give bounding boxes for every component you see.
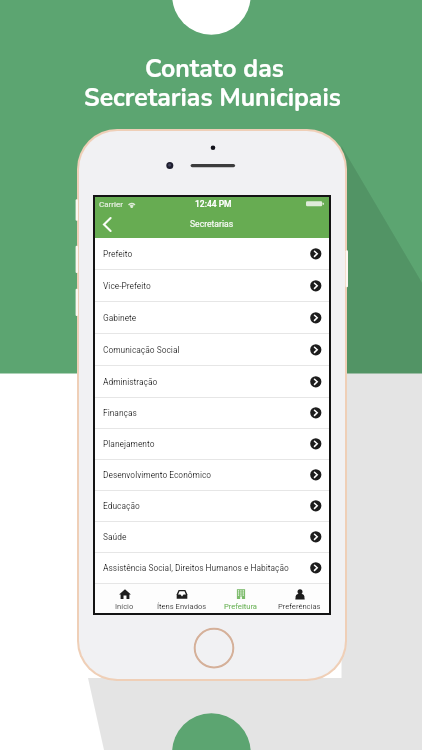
staticText: Administração <box>103 377 158 387</box>
button[interactable]: Vice-Prefeito <box>95 270 329 301</box>
staticText: Vice-Prefeito <box>103 281 151 291</box>
button[interactable]: Administração <box>95 366 329 397</box>
button[interactable]: Início <box>95 584 153 613</box>
button[interactable]: Prefeitura <box>211 584 270 613</box>
staticText: Saúde <box>103 532 127 542</box>
button[interactable]: Planejamento <box>95 429 329 459</box>
staticText: Ítens Enviados <box>157 602 207 611</box>
button[interactable]: Finanças <box>95 398 329 428</box>
button[interactable]: Preferências <box>270 584 329 613</box>
staticText: Finanças <box>103 408 137 418</box>
staticText: Preferências <box>278 602 321 611</box>
staticText: Educação <box>103 501 140 511</box>
staticText: Secretarias <box>190 219 234 229</box>
staticText: Comunicação Social <box>103 345 180 355</box>
button[interactable]: Saúde <box>95 522 329 552</box>
staticText: Desenvolvimento Econômico <box>103 470 212 480</box>
button[interactable]: Assistência Social, Direitos Humanos e H… <box>95 553 329 583</box>
staticText: 12:44 PM <box>195 199 232 209</box>
button[interactable]: Gabinete <box>95 302 329 333</box>
staticText: Início <box>115 602 134 611</box>
button[interactable]: Back <box>95 210 119 238</box>
button[interactable]: Desenvolvimento Econômico <box>95 460 329 490</box>
staticText: Secretarias Municipais <box>84 81 341 115</box>
button[interactable]: Prefeito <box>95 238 329 269</box>
staticText: Planejamento <box>103 439 155 449</box>
staticText: Gabinete <box>103 313 137 323</box>
staticText: Prefeitura <box>224 602 257 611</box>
button[interactable]: Educação <box>95 491 329 521</box>
staticText: Assistência Social, Direitos Humanos e H… <box>103 563 289 573</box>
button[interactable]: Comunicação Social <box>95 334 329 365</box>
staticText: Prefeito <box>103 249 133 259</box>
staticText: Carrier <box>99 200 123 209</box>
button[interactable]: Ítens Enviados <box>153 584 211 613</box>
staticText: Contato das <box>145 52 284 86</box>
